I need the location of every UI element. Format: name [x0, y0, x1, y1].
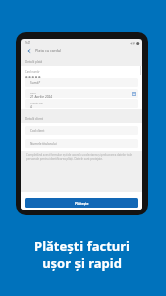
staticText: Card număr [25, 70, 40, 74]
staticText: Numele titularului [30, 142, 57, 146]
staticText: 4 [30, 105, 32, 108]
staticText: Plătești facturi ușor și rapid [0, 237, 165, 272]
staticText: Sumă* [30, 81, 41, 85]
staticText: Completând acest formular ești de acord … [26, 153, 137, 161]
button[interactable]: Back [24, 46, 33, 55]
staticText: Detalii plată [25, 60, 43, 64]
staticText: Detalii client [25, 117, 43, 121]
staticText: ● ● ● ● ● [25, 75, 41, 79]
staticText: Cod client [30, 129, 45, 133]
staticText: Data [30, 91, 36, 94]
staticText: 9:41 [25, 41, 31, 45]
staticText: 21 Aprilie 2024 [30, 95, 53, 98]
staticText: Plata cu cardul [35, 48, 62, 53]
button[interactable]: Pick date [132, 92, 136, 96]
staticText: Număr zile [30, 101, 43, 104]
staticText: Plătește [75, 201, 89, 205]
button[interactable]: Plătește [25, 198, 138, 208]
